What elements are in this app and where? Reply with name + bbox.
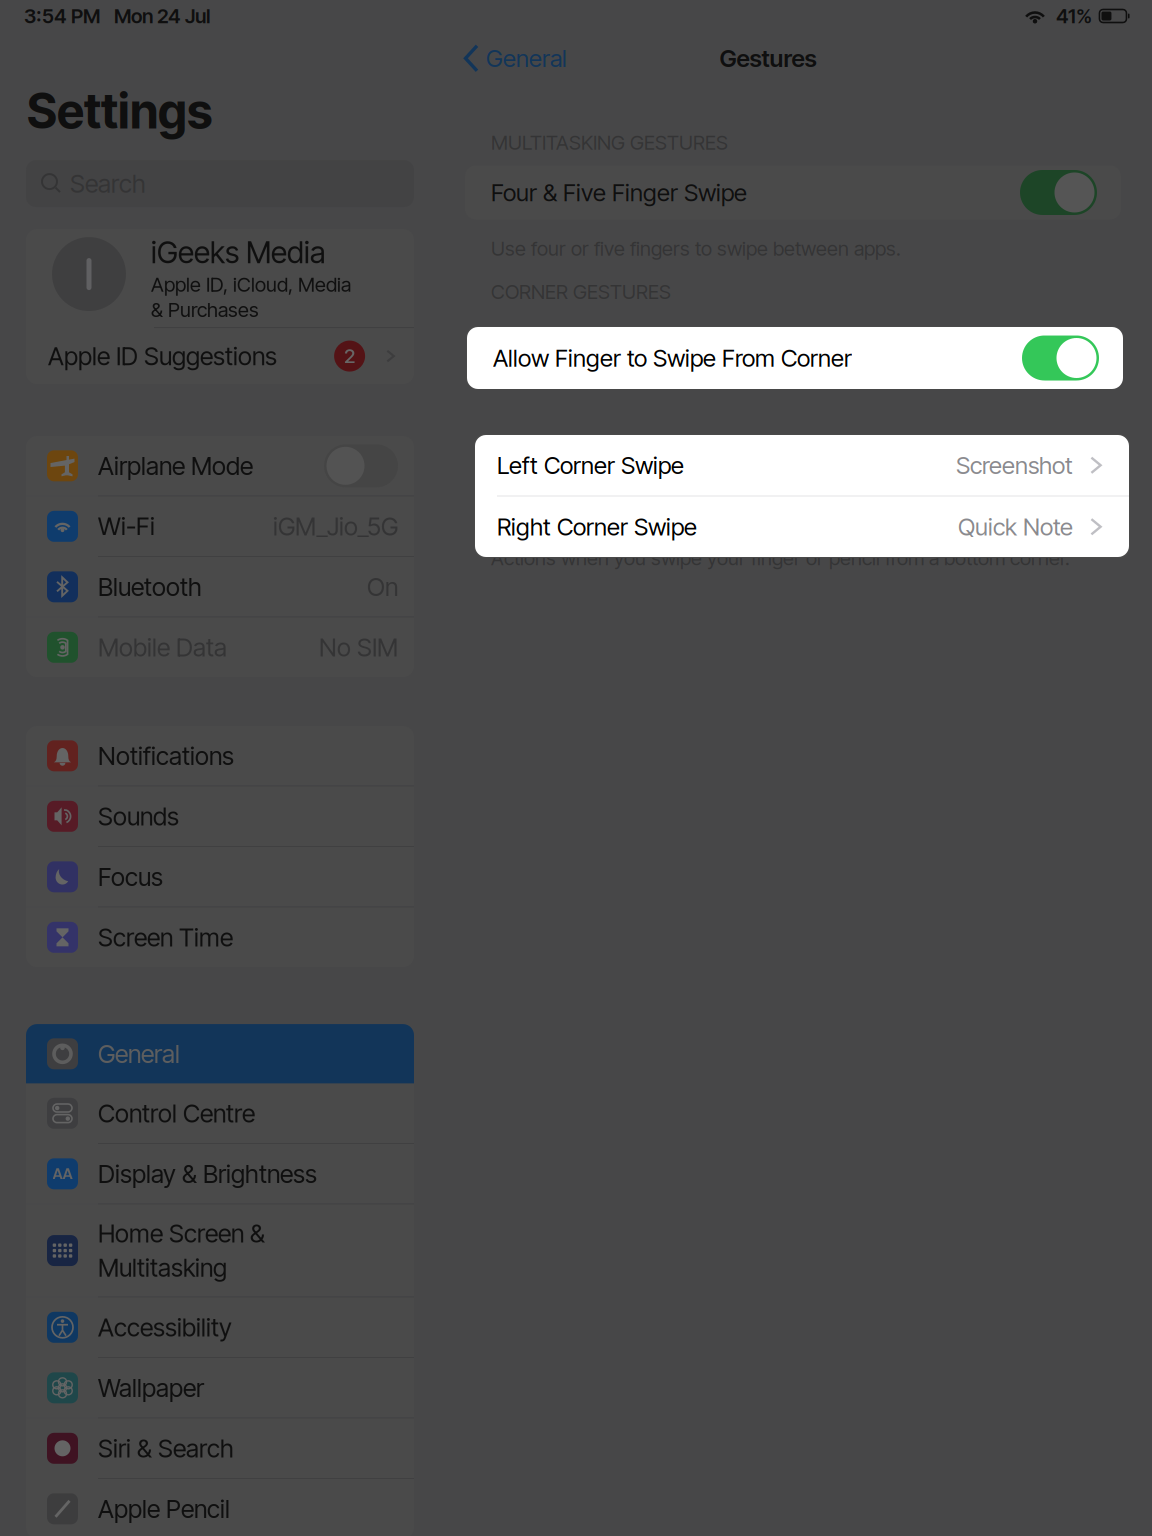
staticText: Notifications (98, 741, 234, 771)
button[interactable]: Apple Pencil (26, 1479, 414, 1536)
staticText: Four & Five Finger Swipe (491, 178, 747, 207)
staticText: Search (70, 168, 146, 199)
staticText: Control Centre (98, 1098, 255, 1128)
button[interactable]: Left Corner Swipe (475, 435, 1129, 495)
staticText: Display & Brightness (98, 1159, 317, 1189)
staticText: Settings (27, 82, 212, 140)
button[interactable]: Bluetooth (26, 557, 414, 617)
staticText: iGM_Jio_5G (273, 511, 398, 541)
staticText: Focus (98, 862, 163, 892)
button[interactable]: Airplane Mode (26, 436, 414, 496)
staticText: No SIM (319, 632, 398, 662)
button[interactable]: Mobile Data (26, 618, 414, 677)
staticText: On (367, 572, 398, 602)
button[interactable]: General (447, 38, 567, 79)
staticText: Mobile Data (98, 632, 227, 662)
staticText: CORNER GESTURES (491, 280, 671, 304)
staticText: Allow Finger to Swipe From Corner (493, 343, 852, 372)
staticText: General (98, 1039, 180, 1069)
staticText: Home Screen & (98, 1218, 265, 1248)
button[interactable]: Accessibility (26, 1298, 414, 1357)
button[interactable]: Home Screen & (26, 1205, 414, 1297)
button[interactable]: Right Corner Swipe (475, 496, 1129, 557)
staticText: Multitasking (98, 1253, 227, 1283)
button[interactable]: Wi-Fi (26, 497, 414, 556)
staticText: Mon 24 Jul (114, 4, 210, 28)
button[interactable]: Control Centre (26, 1084, 414, 1143)
staticText: MULTITASKING GESTURES (491, 130, 728, 154)
staticText: Apple Pencil (98, 1494, 230, 1524)
staticText: Bluetooth (98, 572, 202, 602)
staticText: Apple ID, iCloud, Media (151, 272, 351, 297)
staticText: 2 (344, 344, 355, 368)
staticText: General (486, 44, 567, 73)
staticText: Apple ID Suggestions (48, 341, 277, 371)
staticText: Actions when you swipe your finger or pe… (491, 546, 1070, 570)
staticText: Wi-Fi (98, 511, 155, 541)
staticText: Wallpaper (98, 1373, 204, 1403)
button[interactable]: Sounds (26, 787, 414, 846)
staticText: Sounds (98, 801, 179, 831)
button[interactable]: General (26, 1024, 414, 1084)
staticText: Screenshot (956, 451, 1073, 480)
button[interactable]: Focus (26, 847, 414, 907)
staticText: & Purchases (151, 298, 259, 322)
button[interactable]: Notifications (26, 726, 414, 786)
staticText: Accessibility (98, 1312, 232, 1342)
staticText: Use four or five fingers to swipe betwee… (491, 236, 901, 261)
staticText: Gestures (719, 44, 816, 73)
staticText: Siri & Search (98, 1433, 234, 1463)
staticText: AA (52, 1165, 72, 1183)
button[interactable]: Wallpaper (26, 1358, 414, 1418)
staticText: Airplane Mode (98, 451, 253, 481)
button[interactable]: AA (26, 1144, 414, 1204)
staticText: Left Corner Swipe (497, 451, 684, 480)
button[interactable]: Screen Time (26, 908, 414, 967)
staticText: iGeeks Media (151, 234, 326, 270)
staticText: 41% (1056, 4, 1092, 28)
button[interactable]: Allow Finger to Swipe From Corner (467, 327, 1123, 389)
staticText: Quick Note (958, 512, 1073, 541)
button[interactable]: Siri & Search (26, 1419, 414, 1478)
staticText: Right Corner Swipe (497, 512, 697, 541)
button[interactable]: iGeeks Media (26, 229, 414, 384)
staticText: Screen Time (98, 922, 233, 952)
staticText: 3:54 PM (24, 4, 100, 28)
